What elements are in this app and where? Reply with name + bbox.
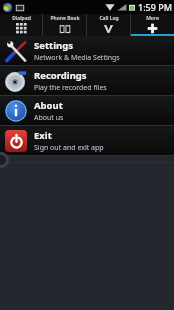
button[interactable]: Exit	[0, 126, 174, 155]
staticText: Settings	[34, 39, 73, 52]
button[interactable]: Recordings	[0, 66, 174, 95]
staticText: About	[34, 99, 63, 112]
button[interactable]: Phone Book	[43, 14, 86, 36]
staticText: Exit	[34, 129, 52, 142]
button[interactable]: More	[131, 14, 174, 36]
staticText: Sign out and exit app	[34, 143, 104, 153]
staticText: 1:59 PM	[138, 1, 172, 13]
other: Badge	[0, 152, 9, 168]
staticText: Play the recorded files	[34, 83, 107, 93]
staticText: Call Log	[99, 15, 119, 22]
staticText: More	[146, 15, 159, 22]
button[interactable]: Dialpad	[0, 14, 42, 36]
staticText: About us	[34, 113, 64, 123]
staticText: Dialpad	[12, 15, 31, 22]
staticText: Phone Book	[50, 15, 80, 22]
staticText: Network & Media Settings	[34, 53, 120, 63]
button[interactable]: Settings	[0, 36, 174, 65]
button[interactable]: Call Log	[87, 14, 130, 36]
staticText: Recordings	[34, 69, 87, 82]
button[interactable]: About	[0, 96, 174, 125]
